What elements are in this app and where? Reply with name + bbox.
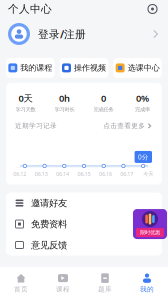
staticText: 学习时长 [54,106,74,113]
staticText: 06.16 [99,170,112,178]
staticText: 免费资料 [31,218,67,230]
staticText: 近期学习记录 [15,122,57,130]
button[interactable]: 我的 [126,269,168,297]
staticText: 课程 [56,285,70,293]
button[interactable]: 课程 [42,269,84,297]
button[interactable]: 题库 [84,269,126,297]
staticText: 我的 [140,285,154,293]
staticText: 限时优惠 [140,229,160,236]
button[interactable]: 限时优惠活动 [133,209,168,239]
staticText: 点击查看更多 [103,122,145,130]
button[interactable]: 选课中心 [113,58,162,78]
staticText: 0 [101,92,106,104]
button[interactable]: 首页 [0,269,42,297]
staticText: 06.13 [35,170,48,178]
staticText: 06.12 [13,170,26,178]
staticText: 个人中心 [8,2,52,15]
staticText: 完成率 [135,106,150,113]
button[interactable]: 我的课程 [6,58,55,78]
staticText: 学习天数 [15,106,35,113]
button[interactable]: 免费资料 [6,213,162,234]
button[interactable]: 设置 [145,1,160,16]
staticText: 06.17 [120,170,133,178]
staticText: 题库 [98,285,112,293]
staticText: 首页 [14,285,28,293]
staticText: 意见反馈 [31,239,67,251]
button[interactable]: 登录/注册 [0,18,168,50]
staticText: 登录/注册 [38,27,86,41]
staticText: 今天 [143,171,153,177]
staticText: 我的课程 [20,63,52,73]
staticText: 操作视频 [74,63,106,73]
staticText: 0h [59,92,70,104]
button[interactable]: 意见反馈 [6,234,162,255]
button[interactable]: 点击查看更多 [103,122,153,130]
staticText: 选课中心 [128,63,160,73]
button[interactable]: 操作视频 [60,58,108,78]
staticText: 邀请好友 [31,197,67,209]
staticText: 0天 [18,92,32,104]
staticText: 06.14 [56,170,69,178]
button[interactable]: 邀请好友 [6,192,162,213]
staticText: 0分 [138,152,149,161]
staticText: 06.15 [77,170,90,178]
staticText: 0% [136,92,149,104]
staticText: 完成任务 [93,106,113,113]
